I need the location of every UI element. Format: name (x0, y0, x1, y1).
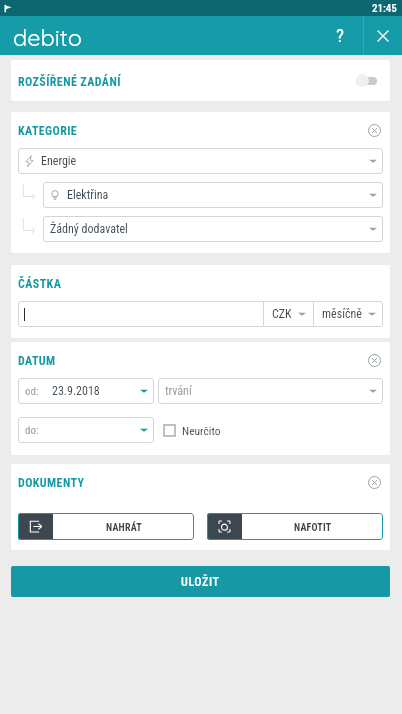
staticText: trvání (165, 384, 192, 398)
button[interactable]: NAFOTIT (207, 513, 383, 540)
button[interactable]: Neurčito (163, 420, 221, 441)
staticText: NAHRÁT (106, 522, 142, 534)
button[interactable]: CZK (264, 301, 313, 327)
button[interactable]: NAHRÁT (18, 513, 194, 540)
button[interactable] (18, 301, 263, 327)
staticText: ULOŽIT (181, 575, 220, 589)
staticText: od: (25, 385, 39, 398)
staticText: měsíčně (322, 307, 362, 321)
staticText: ČÁSTKA (18, 277, 62, 291)
button[interactable]: Help (318, 16, 363, 55)
button[interactable]: Žádný dodavatel (43, 216, 383, 242)
staticText: Neurčito (182, 424, 221, 437)
button[interactable]: ROZŠÍŘENÉ ZADÁNÍ (11, 60, 390, 101)
button[interactable]: od: (18, 378, 154, 404)
button[interactable]: Energie (18, 148, 383, 174)
staticText: KATEGORIE (18, 124, 78, 138)
staticText: ROZŠÍŘENÉ ZADÁNÍ (18, 75, 121, 89)
button[interactable]: ULOŽIT (11, 566, 390, 597)
staticText: Energie (41, 154, 77, 168)
staticText: CZK (272, 307, 292, 321)
staticText: NAFOTIT (294, 522, 332, 534)
button[interactable]: Close (364, 16, 402, 55)
staticText: Žádný dodavatel (50, 222, 128, 236)
staticText: debito (13, 22, 82, 51)
staticText: ? (336, 24, 345, 46)
button[interactable]: Remove section (364, 469, 385, 495)
staticText: 23.9.2018 (52, 384, 100, 398)
button[interactable]: Remove section (364, 347, 385, 373)
button[interactable]: měsíčně (314, 301, 383, 327)
button[interactable]: trvání (158, 378, 383, 404)
staticText: Elektřina (67, 188, 109, 202)
staticText: DATUM (18, 354, 56, 368)
button[interactable]: do: (18, 417, 154, 443)
staticText: do: (25, 424, 39, 437)
button[interactable]: Elektřina (43, 182, 383, 208)
staticText: 21:45 (372, 2, 397, 15)
staticText: DOKUMENTY (18, 476, 85, 490)
button[interactable]: Remove section (364, 117, 385, 143)
